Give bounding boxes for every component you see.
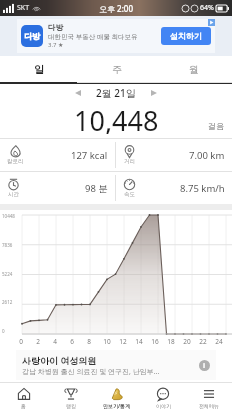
staticText: 2 [36, 337, 40, 346]
staticText: 127 kcal [71, 149, 108, 162]
button[interactable]: 주 [78, 56, 155, 82]
staticText: 64% [200, 3, 214, 13]
button[interactable]: 속도 [116, 172, 232, 204]
staticText: 주 [112, 63, 122, 76]
button[interactable]: 칼로리 [0, 139, 115, 171]
staticText: 10448 [2, 213, 15, 219]
staticText: 8.75 km/h [180, 182, 225, 195]
button[interactable]: 광고 정보 [199, 360, 210, 371]
staticText: 속도 [124, 191, 135, 198]
staticText: 0 [2, 328, 5, 334]
staticText: 걸음 [208, 121, 224, 131]
staticText: 2612 [2, 299, 13, 305]
staticText: 98 분 [85, 182, 108, 195]
staticText: 7.00 km [189, 149, 225, 162]
staticText: 10 [103, 337, 111, 346]
button[interactable]: 일 [0, 56, 78, 82]
staticText: 10,448 [74, 102, 159, 134]
staticText: i [203, 361, 206, 371]
button[interactable]: 전체메뉴 [186, 383, 232, 414]
staticText: 16 [151, 337, 159, 346]
staticText: 0 [19, 337, 23, 346]
staticText: 6 [70, 337, 74, 346]
staticText: 설치하기 [170, 31, 202, 41]
staticText: 대한민국 부동산 매물 최다보유 [48, 32, 138, 41]
staticText: 4 [53, 337, 57, 346]
button[interactable]: 시간 [0, 172, 115, 204]
staticText: 일 [34, 63, 44, 76]
staticText: 5224 [2, 271, 13, 277]
button[interactable]: 만보기/통계 [94, 383, 140, 414]
staticText: 이야기 [156, 403, 171, 409]
button[interactable]: 사랑아이 여성의원 [16, 350, 216, 380]
staticText: 7836 [2, 242, 13, 248]
staticText: 홈 [21, 403, 26, 409]
staticText: 만보기/통계 [103, 403, 131, 410]
staticText: 사랑아이 여성의원 [22, 354, 97, 366]
staticText: 24 [215, 337, 223, 346]
staticText: 월 [189, 63, 199, 76]
staticText: 20 [183, 337, 191, 346]
button[interactable]: 홈 [0, 383, 47, 414]
staticText: 12 [119, 337, 127, 346]
staticText: 14 [135, 337, 143, 346]
button[interactable]: 랭킹 [47, 383, 94, 414]
staticText: 강남 차병원 출신 의료진 및 연구진, 난임부… [22, 367, 160, 377]
button[interactable]: 다음 날짜 [146, 85, 162, 101]
button[interactable]: 이전 날짜 [70, 85, 86, 101]
staticText: 18 [167, 337, 175, 346]
staticText: 다방 [48, 23, 63, 32]
staticText: 거리 [124, 158, 135, 165]
staticText: 랭킹 [66, 403, 76, 409]
staticText: 칼로리 [7, 158, 24, 165]
staticText: 22 [199, 337, 207, 346]
staticText: 8 [87, 337, 91, 346]
button[interactable]: 월 [155, 56, 232, 82]
staticText: 오후 2:00 [99, 3, 133, 14]
staticText: 시간 [8, 191, 19, 198]
staticText: 전체메뉴 [199, 403, 219, 409]
button[interactable]: 다방 [17, 19, 215, 53]
staticText: 2월 21일 [96, 86, 136, 100]
button[interactable]: 이야기 [140, 383, 186, 414]
button[interactable]: 설치하기 [161, 27, 211, 45]
staticText: SKT [17, 3, 30, 13]
button[interactable]: 거리 [116, 139, 232, 171]
staticText: 3.7 ★ [48, 41, 64, 49]
staticText: 다방 [24, 31, 40, 41]
